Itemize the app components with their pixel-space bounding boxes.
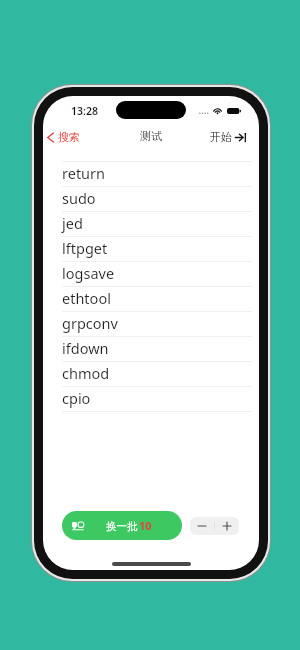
staticText: ethtool	[62, 288, 111, 308]
button[interactable]: ethtool	[43, 287, 259, 312]
button[interactable]: cpio	[43, 387, 259, 412]
staticText: 13:28	[71, 104, 98, 118]
button[interactable]: Increase count	[215, 517, 239, 535]
staticText: 开始	[210, 130, 232, 144]
staticText: 测试	[140, 129, 162, 143]
button[interactable]: lftpget	[43, 237, 259, 262]
staticText: lftpget	[62, 238, 108, 258]
button[interactable]: 开始	[208, 127, 248, 147]
button[interactable]: Decrease count	[190, 517, 214, 535]
button[interactable]: sudo	[43, 187, 259, 212]
staticText: 换一批	[106, 520, 138, 533]
button[interactable]: 搜索	[45, 127, 82, 147]
staticText: ifdown	[62, 338, 109, 358]
staticText: sudo	[62, 188, 96, 208]
staticText: cpio	[62, 388, 91, 408]
staticText: logsave	[62, 263, 115, 283]
staticText: return	[62, 163, 106, 183]
button[interactable]: jed	[43, 212, 259, 237]
button[interactable]: 换一批	[62, 511, 182, 540]
staticText: jed	[62, 213, 83, 233]
button[interactable]: chmod	[43, 362, 259, 387]
button[interactable]: return	[43, 162, 259, 187]
button[interactable]: grpconv	[43, 312, 259, 337]
staticText: 搜索	[58, 130, 80, 144]
staticText: 10	[139, 518, 152, 533]
button[interactable]: ifdown	[43, 337, 259, 362]
staticText: chmod	[62, 363, 110, 383]
staticText: grpconv	[62, 313, 118, 333]
button[interactable]: logsave	[43, 262, 259, 287]
